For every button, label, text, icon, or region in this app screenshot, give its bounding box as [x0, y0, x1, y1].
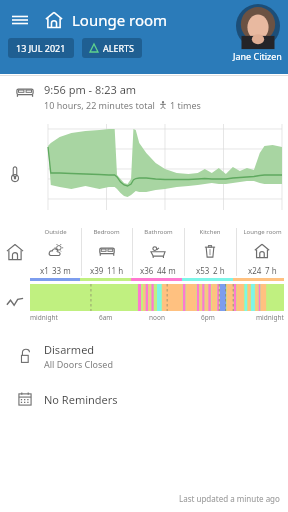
staticText: noon: [149, 313, 165, 322]
staticText: x36: [140, 265, 154, 276]
button[interactable]: Outside: [30, 228, 81, 276]
button[interactable]: No Reminders: [0, 384, 288, 414]
button[interactable]: Disarmed: [0, 338, 288, 374]
staticText: 44 m: [157, 265, 176, 276]
staticText: x24: [248, 265, 262, 276]
button[interactable]: Bathroom: [132, 228, 184, 276]
staticText: 33 m: [52, 265, 71, 276]
button[interactable]: Profile: [233, 4, 282, 62]
button[interactable]: ALERTS: [82, 38, 142, 58]
staticText: midnight: [30, 313, 58, 322]
button[interactable]: Menu: [8, 8, 32, 32]
staticText: 11 h: [107, 265, 124, 276]
staticText: Lounge room: [243, 228, 282, 236]
button[interactable]: Home: [40, 6, 68, 34]
staticText: Disarmed: [44, 342, 95, 357]
button[interactable]: 13 JUL 2021: [8, 38, 74, 58]
staticText: 13 JUL 2021: [16, 42, 66, 54]
button[interactable]: Bedroom: [81, 228, 132, 276]
staticText: 7 h: [265, 265, 277, 276]
staticText: 6pm: [201, 313, 215, 322]
staticText: Kitchen: [199, 228, 221, 236]
staticText: No Reminders: [44, 392, 118, 407]
staticText: Bathroom: [144, 228, 173, 236]
staticText: x53: [196, 265, 210, 276]
staticText: Bedroom: [93, 228, 120, 236]
staticText: x1: [40, 265, 49, 276]
staticText: Jane Citizen: [233, 50, 282, 62]
staticText: All Doors Closed: [44, 358, 113, 370]
button[interactable]: Kitchen: [184, 228, 236, 276]
staticText: 2 h: [213, 265, 225, 276]
button[interactable]: Lounge room: [236, 228, 288, 276]
staticText: 10 hours, 22 minutes total: [44, 99, 155, 111]
staticText: Last updated a minute ago: [179, 493, 280, 504]
button[interactable]: 9:56 pm - 8:23 am: [0, 76, 288, 118]
staticText: x39: [90, 265, 104, 276]
staticText: 1 times: [170, 99, 201, 111]
staticText: 6am: [99, 313, 113, 322]
staticText: ALERTS: [103, 42, 135, 54]
staticText: Lounge room: [72, 10, 168, 30]
staticText: 9:56 pm - 8:23 am: [44, 82, 137, 97]
staticText: midnight: [256, 313, 284, 322]
staticText: Outside: [44, 228, 67, 236]
button[interactable]: midnight: [30, 276, 288, 328]
